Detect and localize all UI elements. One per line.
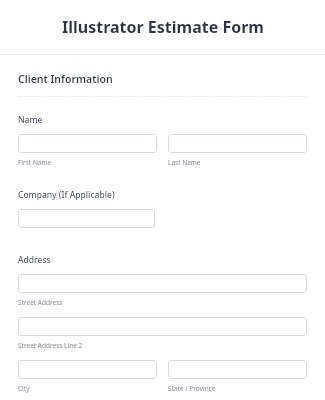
staticText: State / Province <box>168 384 216 393</box>
button[interactable] <box>18 209 155 228</box>
staticText: Company (If Applicable) <box>18 189 115 201</box>
staticText: Last Name <box>168 158 201 167</box>
staticText: Street Address Line 2 <box>18 341 83 350</box>
staticText: First Name <box>18 158 52 167</box>
button[interactable] <box>168 134 307 153</box>
button[interactable] <box>18 360 157 379</box>
staticText: Name <box>18 114 43 126</box>
staticText: Street Address <box>18 298 63 307</box>
staticText: Illustrator Estimate Form <box>62 16 264 38</box>
staticText: Address <box>18 254 51 266</box>
button[interactable] <box>18 134 157 153</box>
staticText: Client Information <box>18 72 113 86</box>
button[interactable] <box>18 317 307 336</box>
button[interactable] <box>168 360 307 379</box>
button[interactable] <box>18 274 307 293</box>
staticText: City <box>18 384 30 393</box>
